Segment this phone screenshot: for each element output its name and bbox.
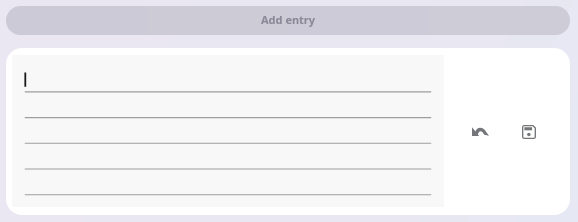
- button[interactable]: Undo: [467, 118, 493, 144]
- button[interactable]: Save: [516, 119, 542, 145]
- button[interactable]: [12, 55, 444, 207]
- staticText: Add entry: [261, 12, 316, 27]
- button[interactable]: Add entry: [6, 6, 570, 35]
